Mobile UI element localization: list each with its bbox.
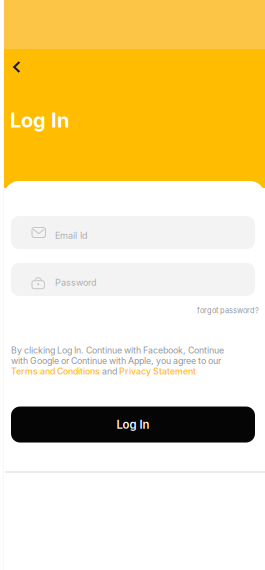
staticText: and <box>100 366 119 377</box>
staticText: Terms and Conditions <box>11 366 100 377</box>
staticText: Email Id <box>55 230 88 241</box>
button[interactable]: Back <box>4 50 35 84</box>
button[interactable]: Password <box>11 263 255 296</box>
staticText: forgot password? <box>197 306 259 315</box>
staticText: By clicking Log In. Continue with Facebo… <box>11 345 224 356</box>
button[interactable]: Terms and Conditions <box>11 366 100 377</box>
button[interactable]: forgot password? <box>193 306 255 315</box>
staticText: Privacy Statement <box>119 366 196 377</box>
staticText: with Google or Continue with Apple, you … <box>11 355 221 366</box>
button[interactable]: Privacy Statement <box>119 366 196 377</box>
staticText: Password <box>55 277 97 288</box>
staticText: Log In <box>10 108 69 132</box>
staticText: Log In <box>116 418 149 431</box>
button[interactable]: Email Id <box>11 216 255 249</box>
button[interactable]: Log In <box>11 406 255 442</box>
